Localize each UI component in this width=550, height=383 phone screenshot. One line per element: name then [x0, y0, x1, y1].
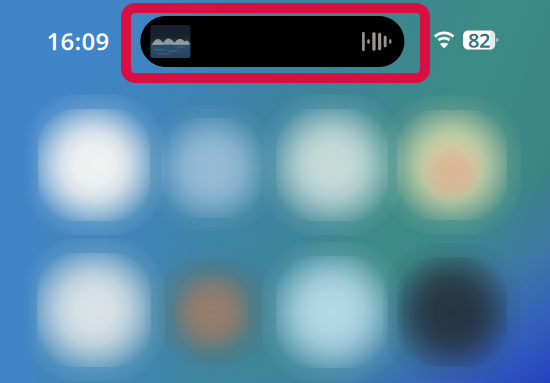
button[interactable]: Now Playing, Dynamic Island: [140, 16, 404, 67]
staticText: 16:09: [46, 25, 109, 57]
staticText: 82: [468, 27, 490, 53]
